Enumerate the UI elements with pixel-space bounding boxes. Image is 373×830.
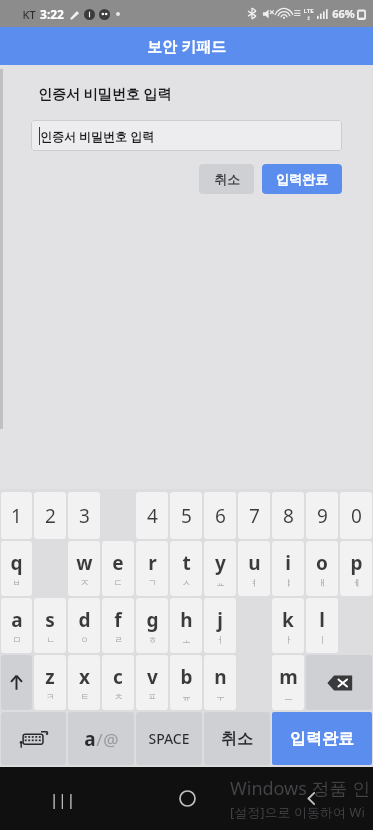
staticText: a	[84, 726, 96, 752]
button[interactable]: 입력완료	[262, 164, 342, 194]
staticText: 5	[181, 503, 192, 529]
staticText: ㄹ	[114, 634, 123, 645]
button[interactable]: g	[136, 598, 168, 653]
staticText: ㅐ	[318, 577, 327, 588]
button[interactable]: 인증서 비밀번호 입력	[31, 120, 342, 151]
staticText: i	[285, 550, 291, 576]
staticText: r	[148, 550, 157, 576]
staticText: Windows 정품 인	[230, 776, 371, 801]
staticText: |||	[50, 789, 75, 809]
staticText: ㅕ	[250, 577, 259, 588]
staticText: ㅔ	[352, 577, 361, 588]
staticText: e	[112, 550, 124, 576]
staticText: ㅎ	[148, 634, 157, 645]
staticText: n	[214, 664, 227, 690]
staticText: ㅈ	[80, 577, 89, 588]
staticText: p	[350, 550, 363, 576]
staticText: 입력완료	[276, 171, 328, 187]
button[interactable]: s	[34, 598, 66, 653]
button[interactable]: f	[102, 598, 134, 653]
staticText: w	[76, 550, 93, 576]
button[interactable]: r	[136, 541, 168, 596]
button[interactable]: 7	[238, 492, 270, 539]
staticText: ㅋ	[46, 691, 55, 702]
staticText: 66%	[332, 6, 355, 21]
staticText: ㅜ	[216, 691, 225, 702]
button[interactable]: 1	[1, 492, 32, 539]
staticText: ㄷ	[114, 577, 123, 588]
button[interactable]: SPACE	[136, 712, 202, 765]
button[interactable]: p	[340, 541, 372, 596]
button[interactable]: i	[272, 541, 304, 596]
button[interactable]: 보안 키패드	[0, 27, 373, 65]
button[interactable]: u	[238, 541, 270, 596]
button[interactable]: 3	[68, 492, 100, 539]
button[interactable]: l	[306, 598, 338, 653]
staticText: ㅇ	[80, 634, 89, 645]
button[interactable]: 4	[136, 492, 168, 539]
button[interactable]: 취소	[204, 712, 270, 765]
button[interactable]: 입력완료	[272, 712, 372, 765]
staticText: ㅠ	[182, 691, 191, 702]
staticText: v	[147, 664, 158, 690]
staticText: ㅓ	[216, 634, 225, 645]
button[interactable]: Home	[125, 767, 249, 830]
button[interactable]: k	[272, 598, 304, 653]
staticText: ㅣ	[318, 634, 327, 645]
staticText: g	[146, 607, 159, 633]
button[interactable]: x	[68, 655, 100, 710]
button[interactable]: Back	[249, 767, 373, 830]
staticText: 보안 키패드	[147, 36, 226, 56]
staticText: ㅂ	[12, 577, 21, 588]
button[interactable]: Backspace	[306, 655, 372, 710]
staticText: 입력완료	[290, 729, 354, 749]
button[interactable]: 9	[306, 492, 338, 539]
button[interactable]: d	[68, 598, 100, 653]
button[interactable]: 취소	[199, 164, 254, 194]
button[interactable]: 5	[170, 492, 202, 539]
button[interactable]: z	[34, 655, 66, 710]
button[interactable]: b	[170, 655, 202, 710]
button[interactable]: Recents	[0, 767, 125, 830]
button[interactable]: m	[272, 655, 304, 710]
button[interactable]: 2	[34, 492, 66, 539]
button[interactable]: a	[68, 712, 134, 765]
button[interactable]: v	[136, 655, 168, 710]
staticText: KT	[22, 7, 36, 22]
button[interactable]: y	[204, 541, 236, 596]
button[interactable]: 0	[340, 492, 372, 539]
button[interactable]: a	[1, 598, 32, 653]
staticText: ㅗ	[182, 634, 191, 645]
staticText: ㅍ	[148, 691, 157, 702]
staticText: LTE	[303, 7, 314, 15]
staticText: u	[248, 550, 261, 576]
staticText: 4	[147, 503, 158, 529]
button[interactable]: e	[102, 541, 134, 596]
button[interactable]: Switch keyboard	[1, 712, 66, 765]
button[interactable]: q	[1, 541, 32, 596]
staticText: /	[96, 728, 103, 751]
button[interactable]: c	[102, 655, 134, 710]
staticText: z	[45, 664, 55, 690]
button[interactable]: o	[306, 541, 338, 596]
staticText: t	[182, 550, 191, 576]
button[interactable]: Shift	[1, 655, 32, 710]
staticText: 3	[79, 503, 90, 529]
button[interactable]: 6	[204, 492, 236, 539]
button[interactable]: 8	[272, 492, 304, 539]
staticText: y	[215, 550, 226, 576]
staticText: q	[10, 550, 23, 576]
button[interactable]: w	[68, 541, 100, 596]
button[interactable]: n	[204, 655, 236, 710]
staticText: ☰	[293, 9, 301, 18]
staticText: l	[319, 607, 325, 633]
staticText: ↕	[306, 15, 311, 21]
staticText: ㅡ	[284, 691, 293, 702]
staticText: 7	[249, 503, 260, 529]
staticText: f	[114, 607, 122, 633]
button[interactable]: h	[170, 598, 202, 653]
button[interactable]: j	[204, 598, 236, 653]
staticText: h	[180, 607, 193, 633]
button[interactable]: t	[170, 541, 202, 596]
staticText: 취소	[221, 729, 253, 749]
